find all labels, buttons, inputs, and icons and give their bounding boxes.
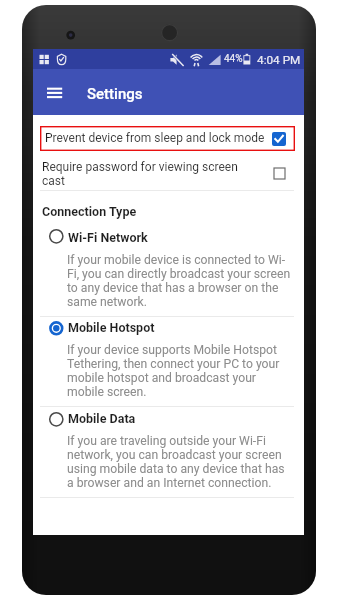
button[interactable] [40,126,295,151]
button[interactable] [40,316,294,394]
staticText: Require password for viewing screen cast [42,160,238,188]
staticText: If your mobile device is connected to Wi… [67,253,291,309]
staticText: 44% [224,53,243,65]
staticText: Prevent device from sleep and lock mode [45,131,265,145]
staticText: Mobile Data [68,411,136,426]
staticText: Connection Type [42,204,137,219]
staticText: Mobile Hotspot [68,320,155,335]
button[interactable]: Prevent device from sleep and lock mode,… [272,132,286,146]
staticText: If you are traveling outside your Wi-Fi … [67,434,285,490]
staticText: Settings [87,85,143,103]
staticText: 4:04 PM [257,53,301,67]
staticText: If your device supports Mobile Hotspot T… [67,343,280,399]
button[interactable]: Require password for viewing screen cast… [274,168,285,179]
button[interactable] [40,155,294,188]
staticText: Wi-Fi Network [68,230,148,245]
button[interactable]: Open navigation menu [39,77,71,109]
button[interactable] [40,408,294,486]
button[interactable] [40,226,294,304]
